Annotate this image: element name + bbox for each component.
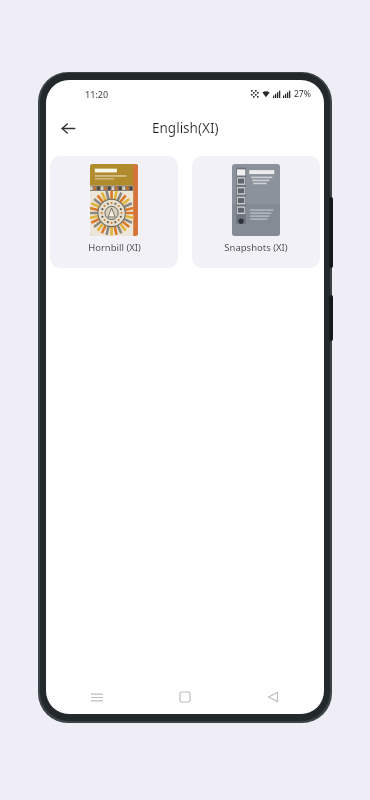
button[interactable]: Back	[256, 680, 290, 714]
button[interactable]: Snapshots (XI)	[192, 156, 320, 268]
button[interactable]: Back	[51, 111, 85, 145]
staticText: English(XI)	[152, 119, 219, 137]
staticText: Snapshots (XI)	[224, 241, 288, 254]
button[interactable]: Home	[168, 680, 202, 714]
staticText: Hornbill (XI)	[88, 241, 141, 254]
staticText: 27%	[294, 88, 311, 100]
button[interactable]: Recent apps	[80, 680, 114, 714]
button[interactable]: Hornbill (XI)	[50, 156, 178, 268]
staticText: 11:20	[85, 88, 109, 100]
